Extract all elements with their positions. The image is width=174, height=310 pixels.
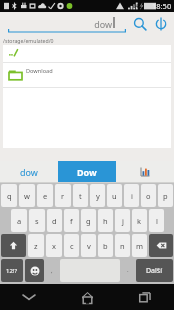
staticText: x bbox=[52, 241, 56, 251]
staticText: v bbox=[87, 241, 91, 251]
staticText: d bbox=[52, 216, 57, 226]
staticText: z bbox=[34, 241, 38, 251]
button[interactable]: Shift bbox=[1, 234, 26, 257]
staticText: k bbox=[137, 216, 142, 226]
staticText: f bbox=[70, 216, 73, 226]
staticText: n bbox=[120, 241, 125, 251]
staticText: Dow bbox=[77, 166, 97, 178]
staticText: i bbox=[131, 191, 133, 201]
button[interactable]: Suggestions bbox=[116, 161, 174, 183]
button[interactable]: t bbox=[73, 184, 88, 207]
staticText: dow bbox=[20, 166, 38, 178]
button[interactable]: Emoji bbox=[25, 259, 44, 282]
staticText: r bbox=[61, 191, 65, 201]
button[interactable]: j bbox=[115, 209, 130, 232]
button[interactable]: Download bbox=[3, 63, 171, 87]
staticText: q bbox=[7, 191, 12, 201]
button[interactable]: s bbox=[29, 209, 45, 232]
button[interactable] bbox=[3, 45, 171, 62]
staticText: j bbox=[122, 216, 124, 226]
button[interactable]: dow bbox=[8, 14, 126, 34]
button[interactable]: 12!? bbox=[1, 259, 23, 282]
staticText: Download bbox=[26, 67, 53, 75]
staticText: dow bbox=[8, 18, 112, 30]
button[interactable]: l bbox=[149, 209, 164, 232]
staticText: o bbox=[146, 191, 151, 201]
button[interactable]: x bbox=[46, 234, 62, 257]
button[interactable]: y bbox=[90, 184, 105, 207]
button[interactable]: g bbox=[81, 209, 96, 232]
button[interactable]: o bbox=[141, 184, 156, 207]
staticText: w bbox=[24, 191, 30, 201]
button[interactable]: i bbox=[124, 184, 139, 207]
button[interactable]: c bbox=[64, 234, 79, 257]
staticText: u bbox=[112, 191, 117, 201]
staticText: /storage/emulated/0 bbox=[3, 37, 54, 44]
button[interactable]: dow bbox=[0, 161, 58, 183]
staticText: p bbox=[163, 191, 168, 201]
staticText: y bbox=[96, 191, 100, 201]
staticText: 18:50 bbox=[152, 1, 172, 11]
button[interactable]: p bbox=[158, 184, 173, 207]
button[interactable]: m bbox=[132, 234, 147, 257]
button[interactable]: u bbox=[107, 184, 122, 207]
staticText: Další bbox=[146, 266, 163, 276]
button[interactable]: v bbox=[81, 234, 96, 257]
staticText: e bbox=[43, 191, 48, 201]
button[interactable]: d bbox=[47, 209, 62, 232]
button[interactable]: z bbox=[28, 234, 44, 257]
button[interactable]: Refresh bbox=[150, 13, 172, 35]
staticText: h bbox=[103, 216, 108, 226]
button[interactable]: Hide keyboard bbox=[0, 284, 58, 310]
button[interactable]: n bbox=[115, 234, 130, 257]
button[interactable]: b bbox=[98, 234, 113, 257]
button[interactable]: h bbox=[98, 209, 113, 232]
button[interactable]: , bbox=[46, 259, 58, 282]
button[interactable]: Search bbox=[130, 14, 150, 34]
staticText: · bbox=[127, 267, 129, 275]
button[interactable]: q bbox=[1, 184, 17, 207]
button[interactable]: a bbox=[11, 209, 27, 232]
staticText: a bbox=[17, 216, 22, 226]
staticText: g bbox=[86, 216, 91, 226]
staticText: , bbox=[51, 267, 53, 275]
button[interactable]: Další bbox=[136, 259, 173, 282]
button[interactable]: w bbox=[19, 184, 35, 207]
button[interactable]: f bbox=[64, 209, 79, 232]
button[interactable]: Backspace bbox=[149, 234, 173, 257]
staticText: m bbox=[136, 241, 144, 251]
button[interactable]: Recent apps bbox=[116, 284, 174, 310]
button[interactable]: e bbox=[37, 184, 53, 207]
staticText: c bbox=[70, 241, 74, 251]
staticText: t bbox=[79, 191, 82, 201]
staticText: 84% bbox=[133, 3, 143, 9]
staticText: b bbox=[103, 241, 108, 251]
staticText: s bbox=[35, 216, 39, 226]
button[interactable]: k bbox=[132, 209, 147, 232]
button[interactable]: Home bbox=[58, 284, 116, 310]
staticText: l bbox=[156, 216, 158, 226]
button[interactable]: Dow bbox=[58, 161, 116, 183]
button[interactable]: r bbox=[55, 184, 71, 207]
staticText: 12!? bbox=[6, 267, 18, 275]
